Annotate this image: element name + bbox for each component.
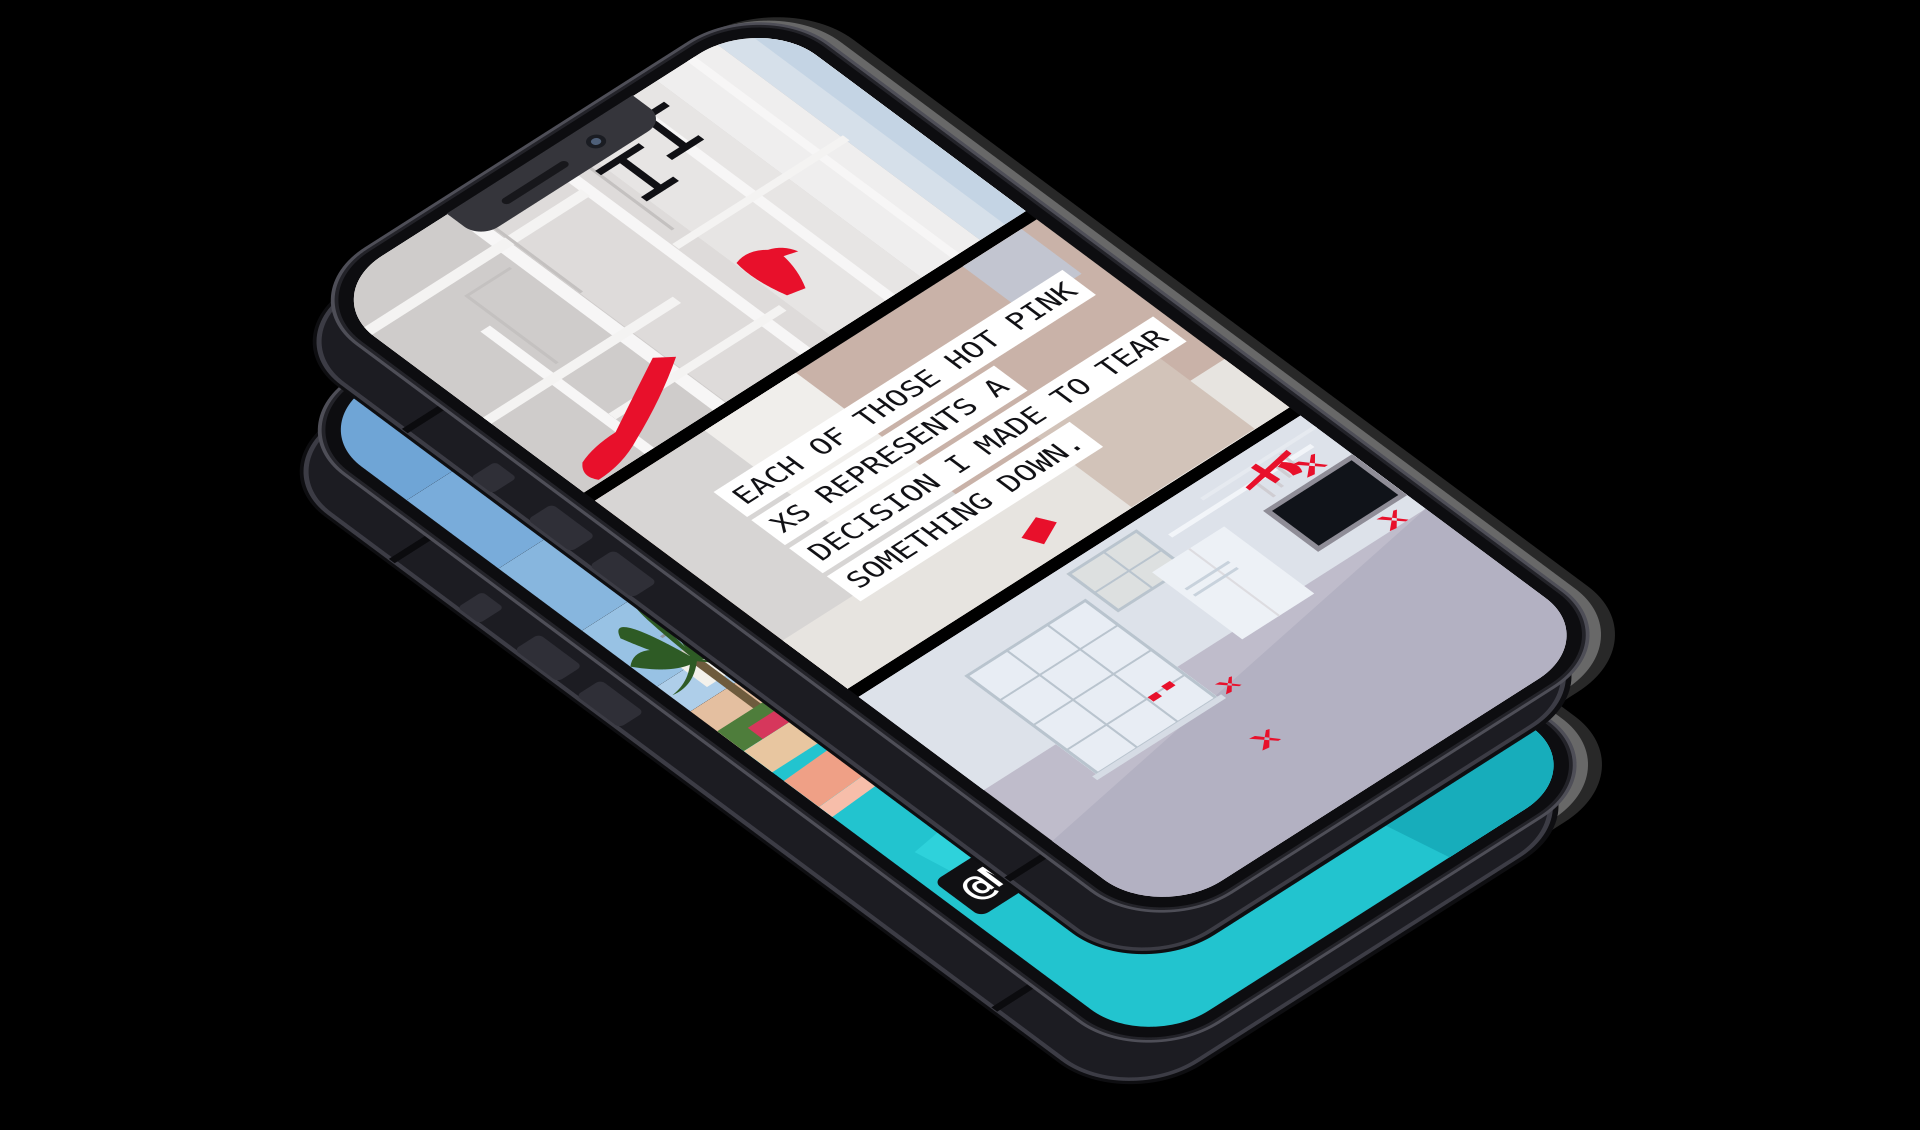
staticText: DECISION I MADE TO TEAR (147, 548, 515, 579)
button[interactable]: Second iPhone showing the pool story (0, 0, 596, 1130)
button[interactable]: iPhone showing the renovation story (0, 0, 596, 1130)
staticText: XS REPRESENTS A (147, 503, 387, 534)
staticText: EACH OF THOSE HOT PINK (147, 458, 499, 488)
